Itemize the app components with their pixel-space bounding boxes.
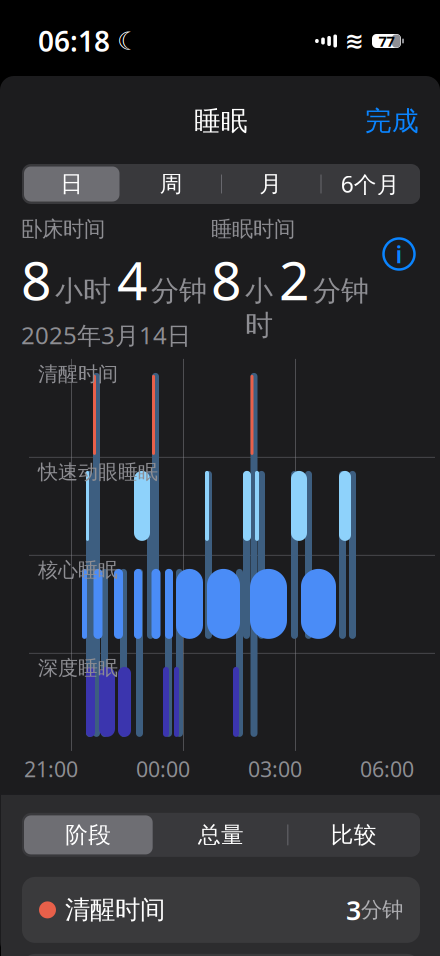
button[interactable]: 日 (22, 164, 121, 204)
staticText: 阶段 (65, 821, 111, 849)
staticText: 2 (279, 244, 310, 315)
staticText: ☾ (117, 27, 140, 55)
staticText: 77 (378, 31, 394, 51)
button[interactable]: 阶段 (22, 813, 155, 857)
staticText: 8 (211, 244, 242, 315)
staticText: 完成 (365, 105, 419, 137)
staticText: 03:00 (248, 755, 302, 783)
staticText: 睡眠 (194, 105, 248, 137)
staticText: 周 (160, 170, 183, 198)
staticText: 卧床时间 (21, 216, 105, 242)
staticText: 清醒时间 (38, 362, 118, 386)
staticText: 00:00 (136, 755, 190, 783)
staticText: 分钟 (361, 897, 403, 923)
staticText: 睡眠时间 (211, 216, 295, 242)
button[interactable]: 清醒时间 (22, 877, 420, 943)
button[interactable]: 总量 (155, 813, 287, 857)
staticText: 8 (21, 244, 52, 315)
staticText: i (395, 238, 402, 270)
button[interactable]: 6个月 (320, 164, 420, 204)
staticText: 日 (60, 170, 83, 198)
staticText: 6个月 (341, 169, 400, 199)
staticText: 4 (117, 244, 148, 315)
staticText: 小时 (245, 274, 273, 343)
staticText: 快速动眼睡眠 (38, 460, 158, 484)
staticText: 小时 (55, 274, 111, 308)
button[interactable]: 完成 (357, 99, 427, 143)
button[interactable]: 比较 (287, 813, 420, 857)
staticText: 06:18 (38, 22, 110, 60)
staticText: 2025年3月14日 (21, 319, 191, 351)
staticText: ≋ (345, 28, 364, 54)
button[interactable]: 关于睡眠数据 (377, 232, 421, 276)
staticText: 核心睡眠 (38, 558, 118, 582)
staticText: 3 (346, 892, 361, 928)
button[interactable]: 周 (121, 164, 221, 204)
button[interactable]: 月 (221, 164, 320, 204)
staticText: 比较 (331, 821, 377, 849)
staticText: 总量 (198, 821, 244, 849)
staticText: 分钟 (151, 274, 207, 308)
staticText: 清醒时间 (65, 894, 165, 925)
staticText: 21:00 (24, 755, 78, 783)
staticText: 06:00 (360, 755, 414, 783)
staticText: 分钟 (313, 274, 369, 308)
staticText: 月 (259, 170, 282, 198)
staticText: 深度睡眠 (38, 656, 118, 680)
